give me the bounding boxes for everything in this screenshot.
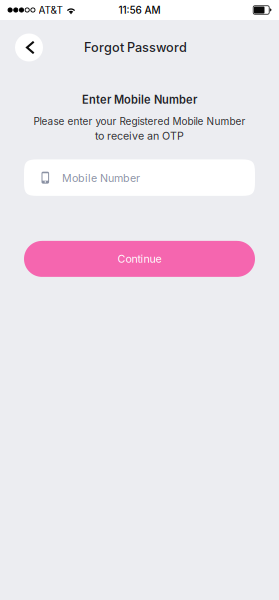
staticText: to receive an OTP xyxy=(95,129,184,142)
staticText: Forgot Password xyxy=(84,40,187,55)
staticText: AT&T xyxy=(38,4,62,16)
staticText: Mobile Number xyxy=(62,172,140,185)
button[interactable]: Continue xyxy=(24,241,255,277)
staticText: Please enter your Registered Mobile Numb… xyxy=(33,115,245,127)
staticText: Continue xyxy=(117,252,161,265)
button[interactable]: Back xyxy=(15,33,43,61)
staticText: 11:56 AM xyxy=(118,4,160,16)
staticText: Enter Mobile Number xyxy=(82,93,197,106)
